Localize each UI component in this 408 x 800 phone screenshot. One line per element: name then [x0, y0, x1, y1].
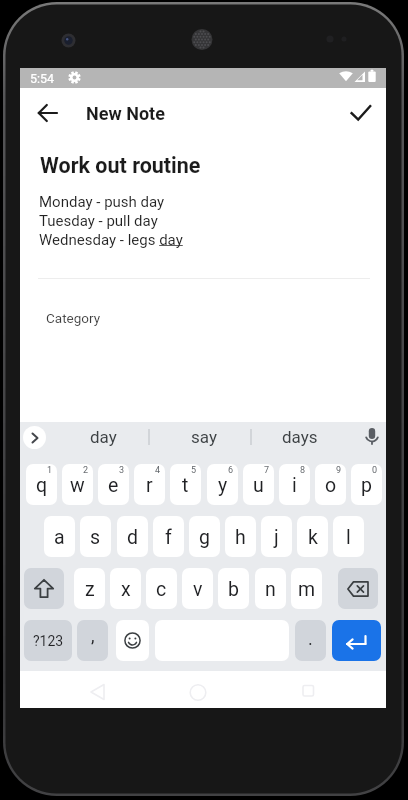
- staticText: Monday - push day Tuesday - pull day Wed…: [39, 193, 183, 248]
- button[interactable]: e: [98, 464, 129, 505]
- staticText: j: [274, 526, 279, 549]
- button[interactable]: days: [255, 425, 345, 449]
- staticText: 3: [119, 465, 125, 476]
- staticText: 5: [191, 465, 197, 476]
- button[interactable]: v: [182, 568, 213, 609]
- staticText: day: [90, 427, 117, 447]
- staticText: f: [165, 526, 172, 549]
- button[interactable]: w: [62, 464, 93, 505]
- staticText: 5:54: [30, 71, 55, 86]
- staticText: 8: [300, 465, 306, 476]
- button[interactable]: day: [58, 425, 148, 449]
- button[interactable]: d: [117, 516, 148, 557]
- staticText: v: [193, 578, 203, 601]
- button[interactable]: [338, 568, 378, 609]
- button[interactable]: [23, 426, 46, 449]
- staticText: .: [308, 628, 313, 649]
- button[interactable]: l: [333, 516, 364, 557]
- button[interactable]: t: [170, 464, 201, 505]
- staticText: h: [235, 526, 246, 549]
- button[interactable]: m: [291, 568, 322, 609]
- button[interactable]: [28, 93, 68, 133]
- button[interactable]: i: [279, 464, 310, 505]
- staticText: d: [127, 526, 138, 549]
- button[interactable]: p: [351, 464, 382, 505]
- staticText: y: [218, 474, 228, 497]
- staticText: 2: [83, 465, 89, 476]
- staticText: c: [156, 578, 167, 601]
- button[interactable]: y: [207, 464, 238, 505]
- button[interactable]: [24, 568, 64, 609]
- button[interactable]: k: [297, 516, 328, 557]
- button[interactable]: f: [153, 516, 184, 557]
- staticText: ,: [91, 625, 95, 646]
- staticText: say: [191, 427, 217, 447]
- button[interactable]: g: [189, 516, 220, 557]
- staticText: 4: [155, 465, 161, 476]
- button[interactable]: n: [255, 568, 286, 609]
- staticText: 6: [228, 465, 234, 476]
- staticText: ?123: [33, 633, 64, 649]
- button[interactable]: z: [74, 568, 105, 609]
- staticText: New Note: [86, 103, 165, 124]
- staticText: z: [85, 578, 95, 601]
- button[interactable]: a: [44, 516, 75, 557]
- button[interactable]: .: [295, 620, 326, 661]
- staticText: w: [70, 474, 85, 497]
- staticText: q: [36, 474, 48, 497]
- staticText: i: [292, 474, 297, 497]
- button[interactable]: [341, 93, 381, 133]
- button[interactable]: s: [80, 516, 111, 557]
- staticText: n: [265, 578, 276, 601]
- staticText: t: [182, 474, 189, 497]
- staticText: k: [308, 526, 318, 549]
- staticText: m: [298, 578, 316, 601]
- staticText: u: [253, 474, 264, 497]
- staticText: g: [199, 526, 210, 549]
- staticText: s: [90, 526, 101, 549]
- button[interactable]: c: [146, 568, 177, 609]
- staticText: Work out routine: [40, 153, 201, 178]
- staticText: e: [108, 474, 119, 497]
- staticText: p: [361, 474, 372, 497]
- staticText: x: [121, 578, 131, 601]
- staticText: o: [325, 474, 337, 497]
- staticText: b: [228, 578, 239, 601]
- staticText: 9: [336, 465, 342, 476]
- button[interactable]: ,: [77, 620, 108, 661]
- button[interactable]: [332, 620, 381, 661]
- staticText: l: [346, 526, 351, 549]
- staticText: 7: [264, 465, 270, 476]
- button[interactable]: q: [26, 464, 57, 505]
- staticText: Category: [46, 310, 101, 326]
- staticText: 0: [372, 465, 378, 476]
- button[interactable]: o: [315, 464, 346, 505]
- staticText: a: [54, 526, 65, 549]
- button[interactable]: [116, 620, 149, 661]
- staticText: days: [282, 427, 318, 447]
- button[interactable]: ?123: [24, 620, 72, 661]
- button[interactable]: j: [261, 516, 292, 557]
- button[interactable]: x: [110, 568, 141, 609]
- button[interactable]: b: [218, 568, 249, 609]
- button[interactable]: u: [243, 464, 274, 505]
- button[interactable]: say: [159, 425, 249, 449]
- staticText: r: [146, 474, 153, 497]
- staticText: 1: [47, 465, 53, 476]
- button[interactable]: h: [225, 516, 256, 557]
- button[interactable]: r: [134, 464, 165, 505]
